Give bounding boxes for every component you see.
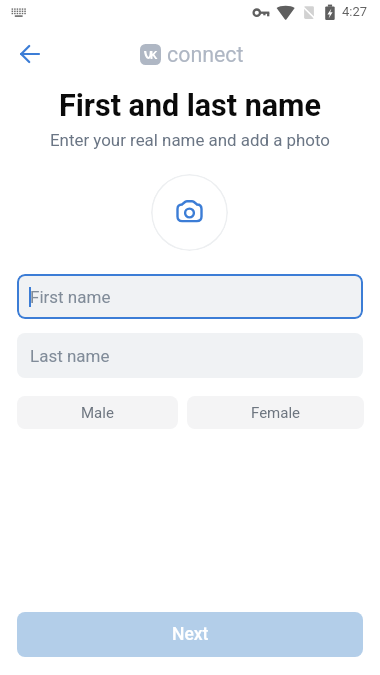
button[interactable]: Last name	[17, 333, 363, 378]
button[interactable]: First name	[17, 274, 363, 319]
button[interactable]: Add photo	[151, 174, 228, 251]
staticText: Last name	[30, 346, 110, 366]
staticText: First name	[30, 287, 111, 307]
button[interactable]: Next	[17, 612, 363, 657]
button[interactable]: Back	[11, 35, 49, 73]
staticText: Male	[81, 404, 114, 422]
staticText: Female	[251, 404, 301, 422]
staticText: 4:27	[342, 4, 368, 19]
button[interactable]: Female	[187, 396, 364, 429]
staticText: Enter your real name and add a photo	[0, 130, 380, 150]
staticText: First and last name	[0, 88, 380, 124]
staticText: connect	[167, 42, 244, 67]
staticText: Next	[172, 624, 209, 645]
button[interactable]: Male	[17, 396, 178, 429]
